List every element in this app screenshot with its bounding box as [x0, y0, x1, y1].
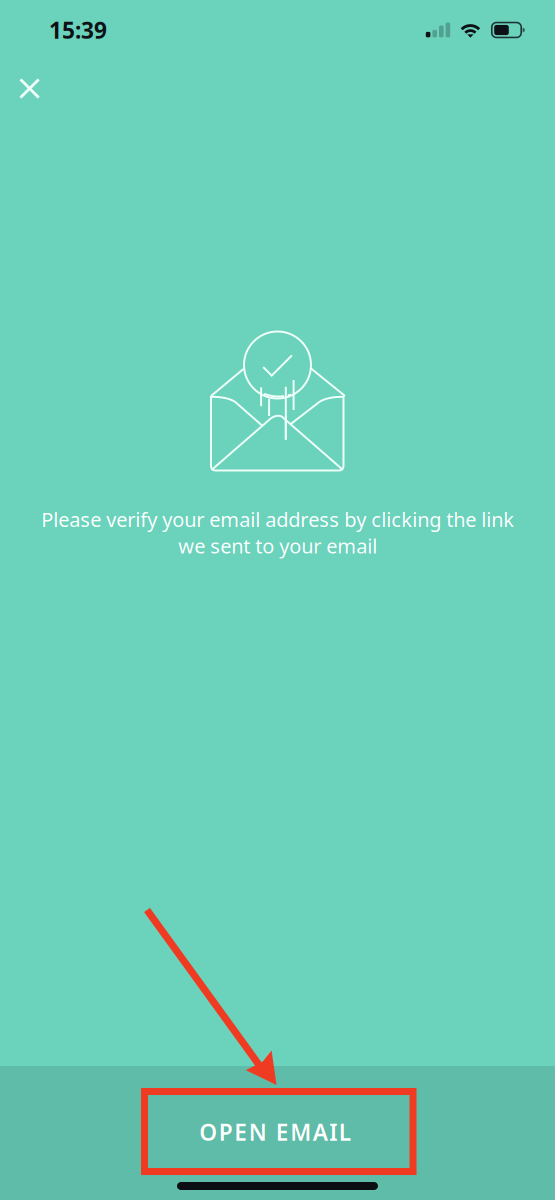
staticText: 15:39 [49, 15, 107, 45]
staticText: Please verify your email address by clic… [41, 506, 514, 559]
staticText: OPEN EMAIL [199, 1117, 351, 1147]
button[interactable]: Close [8, 66, 52, 110]
button[interactable]: OPEN EMAIL [0, 1066, 555, 1200]
